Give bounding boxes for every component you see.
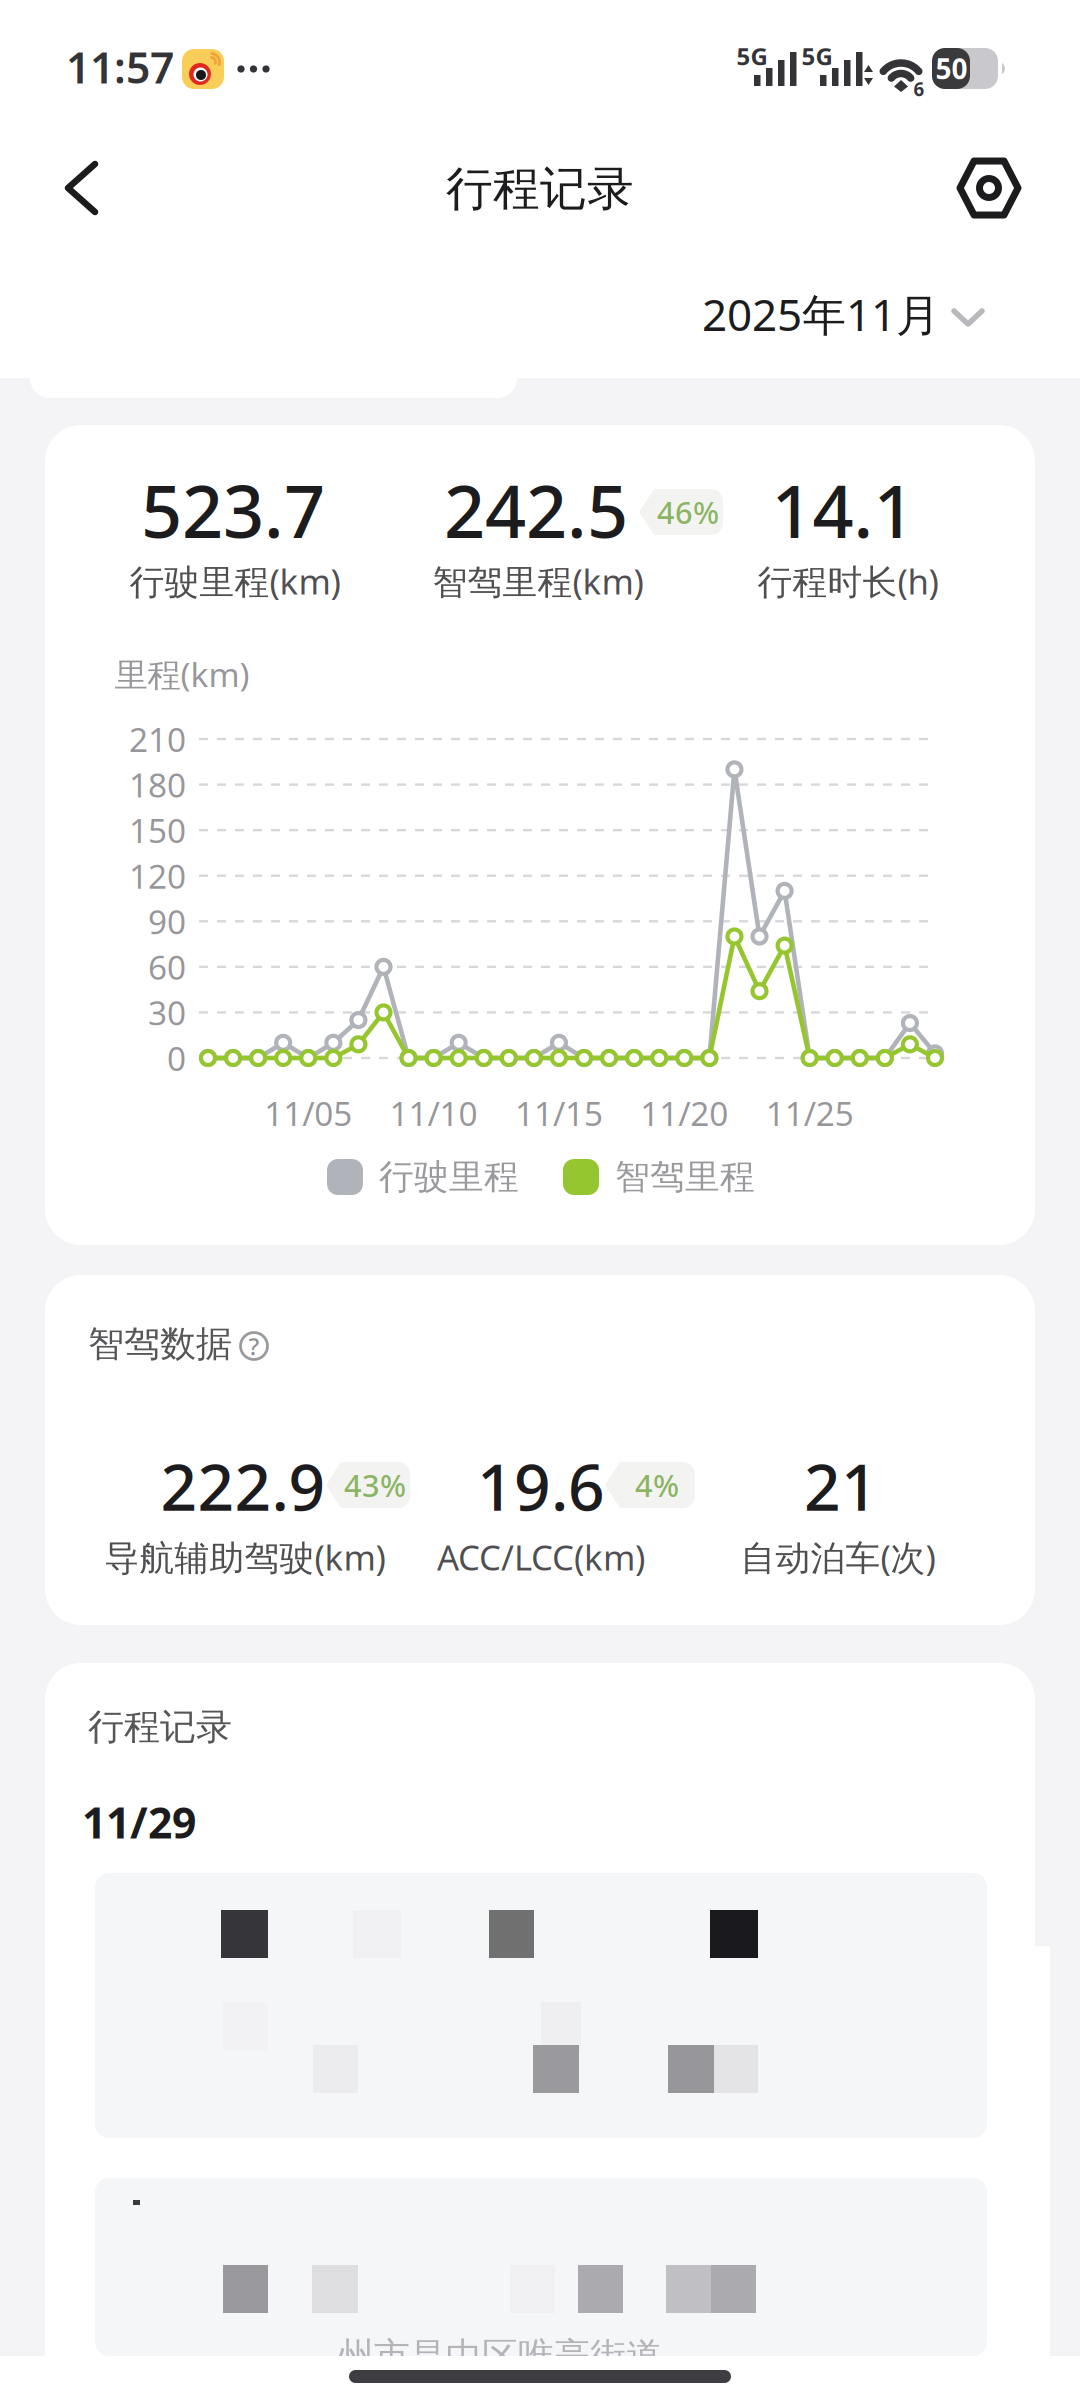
staticText: 60: [148, 945, 186, 989]
staticText: 11/10: [390, 1091, 478, 1135]
staticText: 行驶里程: [379, 1156, 519, 1198]
staticText: 行程记录: [446, 160, 634, 218]
staticText: 自动泊车(次): [740, 1534, 935, 1580]
staticText: 11:57: [66, 39, 174, 95]
staticText: ?: [248, 1330, 259, 1362]
staticText: 180: [129, 762, 186, 807]
staticText: 2025年11月: [702, 285, 940, 343]
staticText: 州市昌中区唯亮街道: [338, 2334, 662, 2378]
staticText: 4%: [635, 1465, 679, 1505]
staticText: 11/25: [766, 1091, 854, 1135]
staticText: 120: [129, 854, 186, 898]
staticText: 11/20: [640, 1091, 728, 1135]
staticText: 19.6: [477, 1443, 605, 1528]
button[interactable]: Settings: [956, 156, 1022, 220]
staticText: 14.1: [771, 462, 914, 558]
staticText: 90: [148, 899, 186, 943]
staticText: 11/15: [515, 1091, 603, 1135]
staticText: 210: [129, 717, 186, 761]
staticText: 50: [935, 50, 967, 87]
staticText: 5G: [736, 40, 767, 72]
staticText: 智驾数据: [88, 1322, 232, 1366]
staticText: 11/05: [264, 1091, 352, 1135]
staticText: 导航辅助驾驶(km): [104, 1534, 385, 1580]
staticText: 智驾里程: [615, 1156, 755, 1198]
staticText: 46%: [657, 492, 719, 532]
staticText: 行程时长(h): [757, 558, 938, 604]
staticText: 21: [804, 1443, 878, 1528]
staticText: 30: [148, 990, 186, 1035]
staticText: 里程(km): [114, 652, 249, 696]
button[interactable]: Back: [54, 156, 110, 220]
staticText: 43%: [344, 1465, 406, 1505]
staticText: 523.7: [141, 462, 325, 558]
staticText: 智驾里程(km): [432, 558, 643, 604]
staticText: 5G: [801, 40, 832, 72]
staticText: 0: [167, 1036, 186, 1080]
button[interactable]: 行程 2: [95, 2178, 987, 2356]
staticText: 242.5: [444, 462, 628, 558]
staticText: 6: [913, 77, 924, 101]
staticText: ACC/LCC(km): [437, 1534, 645, 1580]
staticText: 222.9: [160, 1443, 325, 1528]
button[interactable]: 2025年11月: [702, 285, 984, 343]
staticText: 行驶里程(km): [129, 558, 340, 604]
staticText: 150: [129, 808, 186, 852]
staticText: 11/29: [82, 1794, 196, 1850]
staticText: 行程记录: [88, 1705, 232, 1749]
button[interactable]: 行程 1: [95, 1873, 987, 2138]
button[interactable]: 智驾数据说明: [238, 1330, 270, 1362]
